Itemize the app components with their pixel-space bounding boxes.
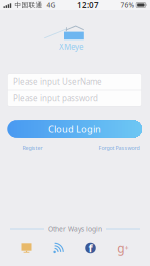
button[interactable]: Google Plus login bbox=[117, 242, 129, 253]
staticText: f bbox=[88, 241, 92, 255]
staticText: Forgot Password bbox=[98, 144, 139, 152]
staticText: + bbox=[125, 244, 129, 252]
button[interactable]: Register bbox=[22, 144, 42, 152]
staticText: 中国联通 bbox=[12, 1, 42, 9]
button[interactable]: Facebook login bbox=[85, 242, 96, 253]
staticText: Cloud Login bbox=[48, 123, 101, 135]
button[interactable]: Forgot Password bbox=[98, 144, 139, 152]
button[interactable]: Wi-Fi login bbox=[53, 242, 64, 253]
button[interactable]: Cloud Login bbox=[7, 120, 142, 137]
staticText: 12:07 bbox=[77, 0, 99, 10]
staticText: Please input UserName bbox=[13, 76, 102, 87]
staticText: XMeye bbox=[59, 42, 84, 52]
staticText: 4G bbox=[42, 1, 55, 9]
staticText: g bbox=[117, 240, 124, 256]
staticText: Other Ways login bbox=[48, 225, 102, 233]
staticText: Please input password bbox=[13, 93, 98, 103]
staticText: 76% bbox=[121, 1, 135, 9]
staticText: Register bbox=[22, 144, 42, 152]
button[interactable]: Local device login bbox=[21, 242, 32, 253]
